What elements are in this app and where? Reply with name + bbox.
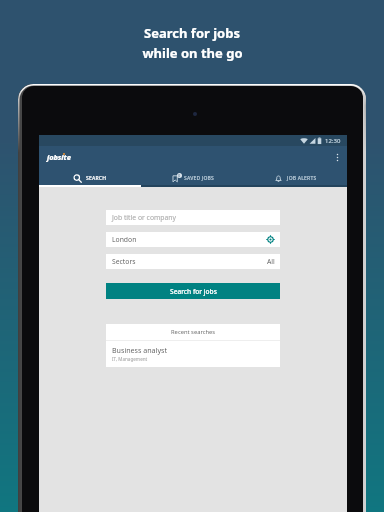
staticText: while on the go — [142, 44, 243, 62]
button[interactable]: More options — [328, 148, 346, 166]
staticText: jobsite — [47, 152, 71, 162]
staticText: Business analyst — [112, 345, 167, 355]
staticText: Job title or company — [112, 213, 177, 222]
button[interactable]: Sectors — [106, 254, 280, 269]
staticText: Recent searches — [171, 328, 216, 336]
button[interactable]: 0 — [141, 169, 244, 187]
staticText: SEARCH — [86, 175, 107, 182]
staticText: Search for jobs — [144, 24, 240, 42]
staticText: JOB ALERTS — [287, 175, 317, 182]
button[interactable]: Business analyst — [106, 341, 280, 367]
staticText: 12:30 — [325, 137, 341, 145]
staticText: IT, Management — [112, 356, 148, 362]
button[interactable]: Job title or company — [106, 210, 280, 225]
staticText: All — [267, 257, 275, 266]
button[interactable]: JOB ALERTS — [244, 169, 347, 187]
staticText: Search for jobs — [170, 287, 217, 296]
staticText: 0 — [178, 173, 181, 178]
staticText: SAVED JOBS — [184, 175, 215, 182]
staticText: Sectors — [112, 257, 136, 266]
button[interactable]: Search for jobs — [106, 283, 280, 299]
button[interactable]: SEARCH — [39, 169, 141, 187]
staticText: London — [112, 235, 137, 244]
button[interactable]: London — [106, 232, 280, 247]
